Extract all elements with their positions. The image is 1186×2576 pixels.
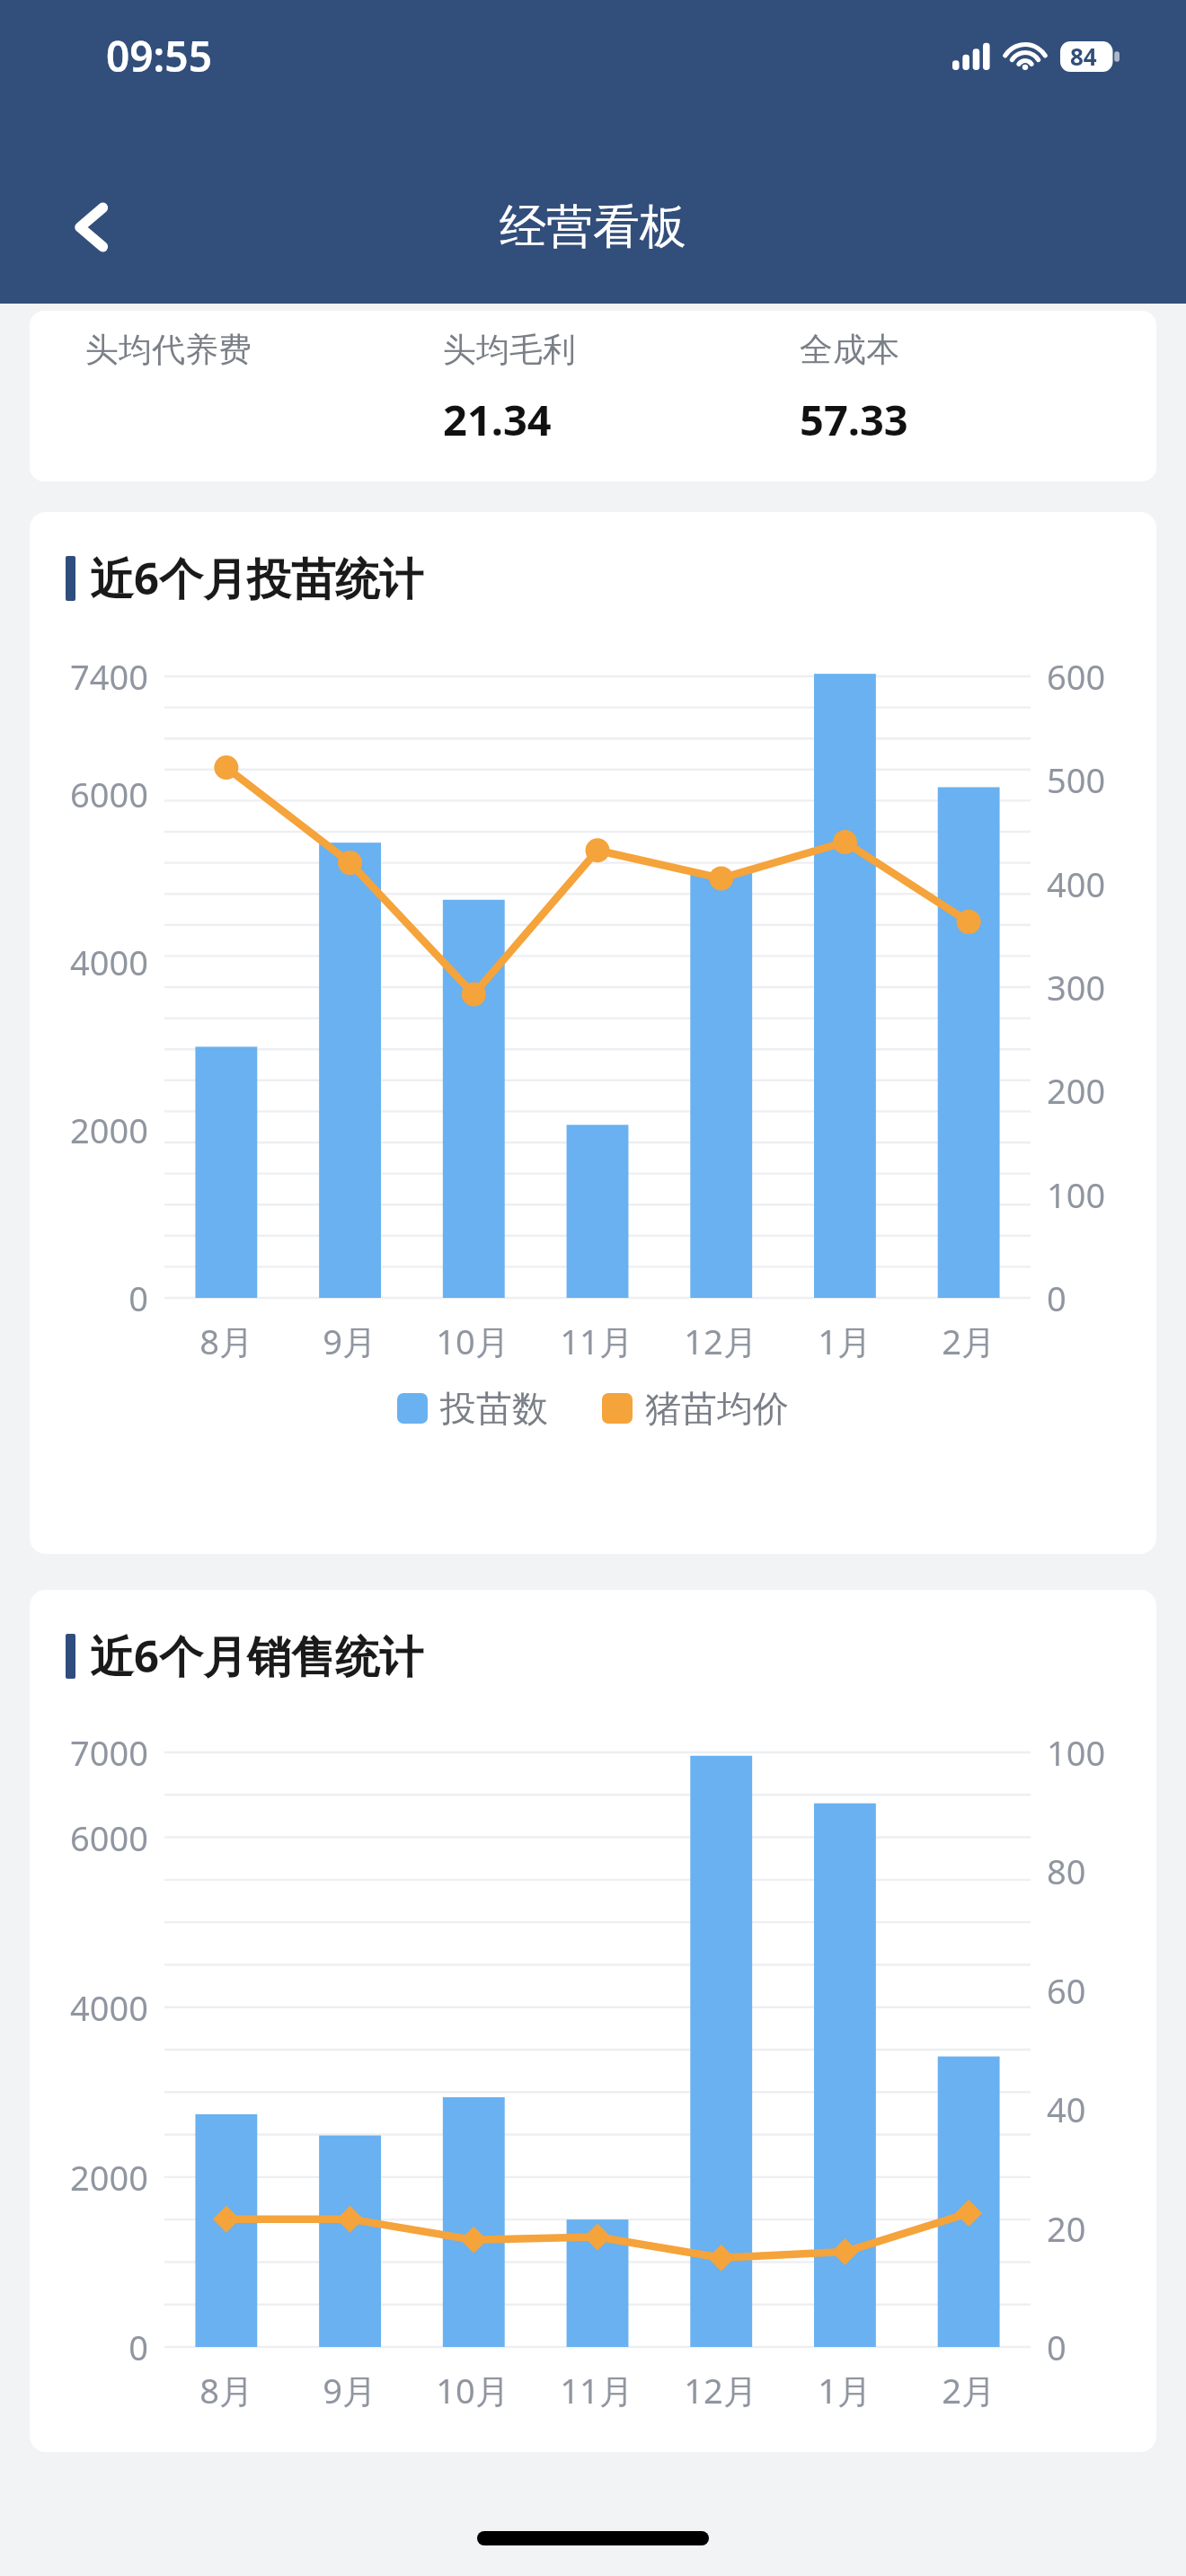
staticText: 8月 xyxy=(199,1318,253,1364)
staticText: 近6个月销售统计 xyxy=(90,1626,424,1686)
staticText: 2000 xyxy=(70,2154,148,2201)
staticText: 200 xyxy=(1047,1067,1106,1114)
staticText: 2月 xyxy=(942,1318,996,1364)
staticText: 60 xyxy=(1047,1967,1086,2014)
staticText: 头均毛利 xyxy=(443,329,576,371)
staticText: 12月 xyxy=(684,2367,757,2413)
staticText: 4000 xyxy=(70,1984,148,2031)
staticText: 2月 xyxy=(942,2367,996,2413)
staticText: 40 xyxy=(1047,2086,1086,2132)
staticText: 1月 xyxy=(818,2367,872,2413)
staticText: 1月 xyxy=(818,1318,872,1364)
staticText: 0 xyxy=(1047,1275,1067,1321)
staticText: 9月 xyxy=(323,2367,376,2413)
staticText: 猪苗均价 xyxy=(645,1386,789,1431)
button[interactable]: 头均代养费 xyxy=(30,311,1156,481)
staticText: 500 xyxy=(1047,756,1106,803)
staticText: 近6个月投苗统计 xyxy=(90,548,424,608)
button[interactable]: Back xyxy=(41,177,142,278)
staticText: 12月 xyxy=(684,1318,757,1364)
staticText: 20 xyxy=(1047,2205,1086,2252)
button[interactable]: 投苗数 xyxy=(397,1386,548,1431)
staticText: 7000 xyxy=(70,1729,148,1776)
staticText: 4000 xyxy=(70,939,148,985)
staticText: 21.34 xyxy=(443,391,552,448)
staticText: 400 xyxy=(1047,860,1106,907)
staticText: 11月 xyxy=(560,1318,633,1364)
staticText: 经营看板 xyxy=(500,198,686,257)
staticText: 10月 xyxy=(436,1318,509,1364)
staticText: 0 xyxy=(1047,2324,1067,2370)
staticText: 8月 xyxy=(199,2367,253,2413)
staticText: 0 xyxy=(128,1275,148,1321)
staticText: 10月 xyxy=(436,2367,509,2413)
staticText: 6000 xyxy=(70,771,148,817)
staticText: 投苗数 xyxy=(440,1386,548,1431)
button[interactable]: 猪苗均价 xyxy=(602,1386,789,1431)
staticText: 9月 xyxy=(323,1318,376,1364)
staticText: 84 xyxy=(1070,40,1097,72)
staticText: 80 xyxy=(1047,1848,1086,1894)
button[interactable]: 近6个月投苗统计 xyxy=(66,548,1156,608)
staticText: 600 xyxy=(1047,653,1106,700)
staticText: 头均代养费 xyxy=(85,329,252,371)
staticText: 全成本 xyxy=(800,329,899,371)
staticText: 0 xyxy=(128,2324,148,2370)
staticText: 2000 xyxy=(70,1107,148,1153)
staticText: 100 xyxy=(1047,1729,1106,1776)
staticText: 100 xyxy=(1047,1171,1106,1218)
staticText: 11月 xyxy=(560,2367,633,2413)
staticText: 6000 xyxy=(70,1814,148,1861)
staticText: 7400 xyxy=(70,653,148,700)
staticText: 09:55 xyxy=(106,28,212,84)
staticText: 57.33 xyxy=(800,391,908,448)
button[interactable]: 近6个月销售统计 xyxy=(66,1626,1156,1686)
staticText: 300 xyxy=(1047,964,1106,1010)
